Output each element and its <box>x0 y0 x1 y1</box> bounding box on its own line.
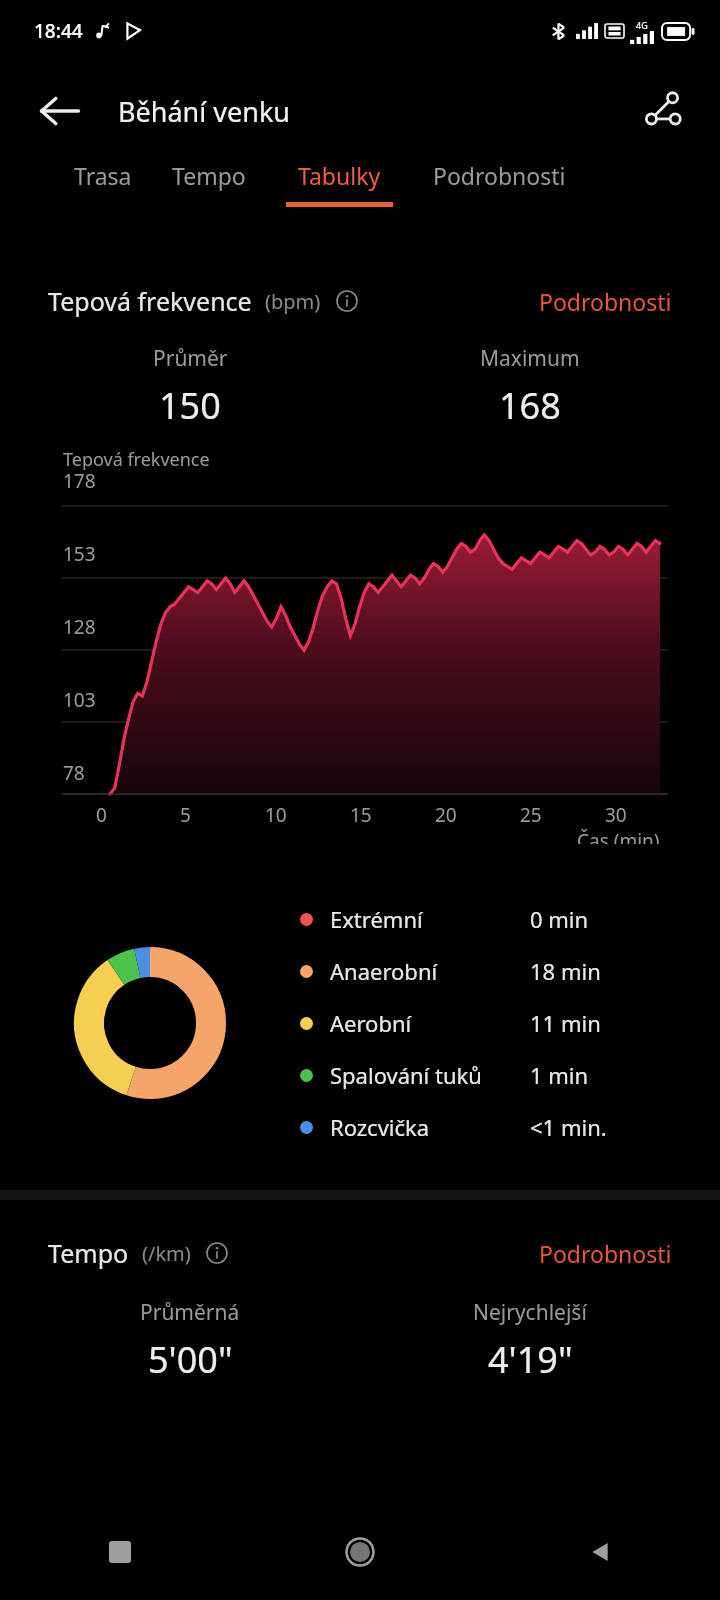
staticText: 178 <box>63 468 96 494</box>
button[interactable]: Trasa <box>70 160 136 202</box>
staticText: 15 <box>350 802 372 828</box>
staticText: Tabulky <box>298 160 381 191</box>
button[interactable]: Info <box>202 1238 232 1268</box>
staticText: Extrémní <box>330 904 530 934</box>
staticText: 150 <box>159 381 221 430</box>
staticText: Podrobnosti <box>433 160 566 191</box>
staticText: 20 <box>435 802 457 828</box>
staticText: Průměr <box>153 344 228 373</box>
staticText: Průměrná <box>140 1298 240 1327</box>
button[interactable]: Tabulky <box>282 160 397 207</box>
staticText: Anaerobní <box>330 956 530 986</box>
staticText: Tepová frekvence <box>63 447 210 472</box>
staticText: Čas (min) <box>577 828 660 844</box>
staticText: 10 <box>265 802 287 828</box>
staticText: Rozcvička <box>330 1112 530 1142</box>
staticText: Aerobní <box>330 1008 530 1038</box>
button[interactable]: Podrobnosti <box>531 280 680 323</box>
staticText: 103 <box>63 687 96 713</box>
staticText: 0 <box>96 802 107 828</box>
staticText: 30 <box>605 802 627 828</box>
staticText: 4G <box>636 19 648 31</box>
button[interactable]: Back <box>34 85 86 137</box>
staticText: 4'19" <box>488 1335 573 1384</box>
staticText: 18 min <box>530 956 601 986</box>
button[interactable]: Info <box>332 286 362 316</box>
staticText: 5'00" <box>148 1335 233 1384</box>
staticText: 78 <box>63 760 85 786</box>
staticText: (bpm) <box>265 288 321 315</box>
staticText: 153 <box>63 541 96 567</box>
staticText: Tempo <box>48 1236 129 1270</box>
staticText: 5 <box>180 802 191 828</box>
staticText: Tempo <box>172 160 246 191</box>
button[interactable]: Podrobnosti <box>531 1232 680 1275</box>
staticText: (/km) <box>142 1240 191 1267</box>
button[interactable]: Extrémní <box>300 904 680 934</box>
button[interactable]: Podrobnosti <box>429 160 570 202</box>
staticText: Trasa <box>74 160 132 191</box>
button[interactable]: Back <box>480 1504 720 1600</box>
staticText: 1 min <box>530 1060 589 1090</box>
button[interactable]: Anaerobní <box>300 956 680 986</box>
staticText: Spalování tuků <box>330 1060 530 1090</box>
staticText: Podrobnosti <box>539 286 672 317</box>
staticText: Běhání venku <box>118 93 291 130</box>
staticText: 11 min <box>530 1008 601 1038</box>
button[interactable]: Rozcvička <box>300 1112 680 1142</box>
button[interactable]: Home <box>240 1504 480 1600</box>
staticText: Tepová frekvence <box>48 284 252 318</box>
button[interactable]: Spalování tuků <box>300 1060 680 1090</box>
staticText: Maximum <box>480 344 580 373</box>
staticText: 168 <box>499 381 561 430</box>
button[interactable]: Tempo <box>168 160 250 202</box>
staticText: 25 <box>520 802 542 828</box>
staticText: 128 <box>63 614 96 640</box>
button[interactable]: Aerobní <box>300 1008 680 1038</box>
staticText: 18:44 <box>34 18 83 44</box>
staticText: Nejrychlejší <box>473 1298 587 1327</box>
button[interactable]: Recents <box>0 1504 240 1600</box>
staticText: <1 min. <box>530 1112 607 1142</box>
staticText: Podrobnosti <box>539 1238 672 1269</box>
staticText: 0 min <box>530 904 589 934</box>
button[interactable]: Share <box>634 83 690 139</box>
